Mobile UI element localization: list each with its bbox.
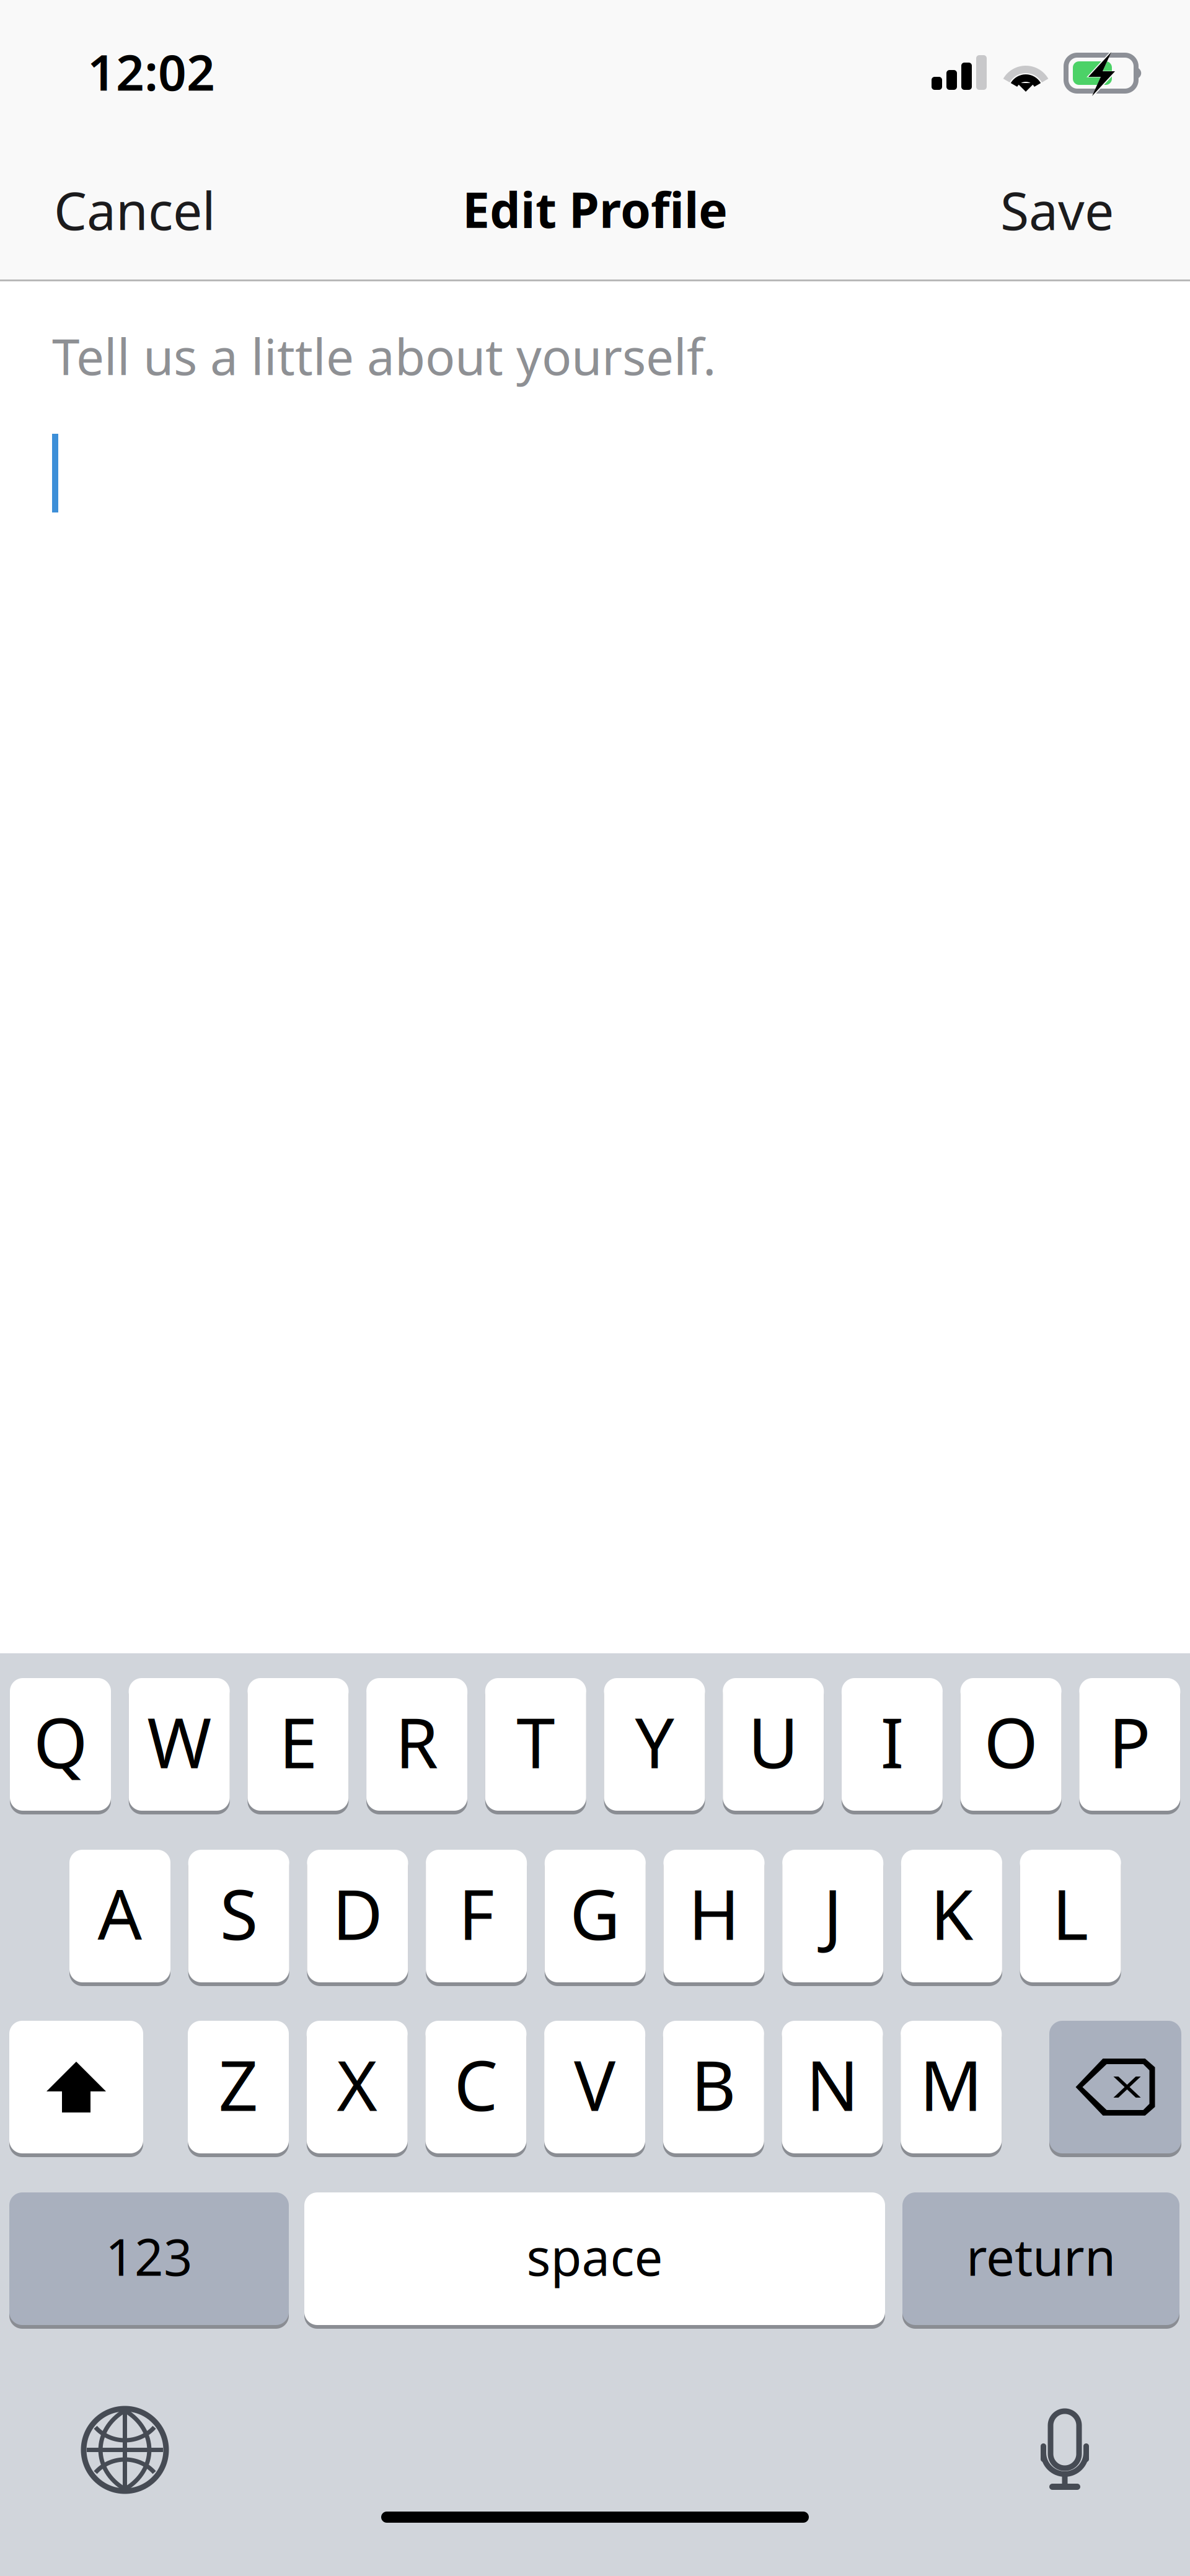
button[interactable]: T	[485, 1678, 586, 1814]
staticText: X	[337, 2038, 378, 2130]
button[interactable]: D	[307, 1850, 408, 1986]
button[interactable]: F	[426, 1850, 527, 1986]
staticText: Edit Profile	[462, 177, 728, 241]
button[interactable]: return	[902, 2192, 1179, 2329]
button[interactable]: X	[307, 2021, 408, 2157]
staticText: 12:02	[87, 38, 215, 104]
staticText: return	[966, 2223, 1116, 2290]
button[interactable]: A	[69, 1850, 170, 1986]
button[interactable]: Next keyboard	[84, 2409, 166, 2491]
button[interactable]: L	[1020, 1850, 1121, 1986]
button[interactable]: P	[1079, 1678, 1180, 1814]
staticText: N	[806, 2038, 859, 2130]
staticText: A	[98, 1867, 142, 1959]
button[interactable]: 123	[9, 2192, 289, 2329]
button[interactable]: S	[188, 1850, 289, 1986]
staticText: V	[574, 2038, 616, 2130]
button[interactable]: Save	[988, 158, 1126, 262]
button[interactable]: Z	[188, 2021, 289, 2157]
button[interactable]: Shift	[9, 2021, 143, 2157]
button[interactable]: Y	[604, 1678, 705, 1814]
button[interactable]: W	[129, 1678, 230, 1814]
button[interactable]: U	[723, 1678, 824, 1814]
staticText: Y	[635, 1695, 674, 1787]
staticText: Z	[218, 2038, 258, 2130]
button[interactable]: K	[901, 1850, 1002, 1986]
button[interactable]: Dictation	[1041, 2411, 1089, 2490]
staticText: R	[395, 1695, 439, 1787]
staticText: 123	[105, 2223, 193, 2290]
button[interactable]: G	[545, 1850, 646, 1986]
button[interactable]: H	[663, 1850, 765, 1986]
staticText: S	[220, 1867, 258, 1959]
staticText: space	[527, 2223, 663, 2290]
staticText: L	[1052, 1867, 1089, 1959]
button[interactable]: C	[425, 2021, 526, 2157]
button[interactable]: Cancel	[42, 158, 228, 262]
button[interactable]: M	[901, 2021, 1002, 2157]
staticText: I	[880, 1695, 904, 1787]
button[interactable]: I	[842, 1678, 943, 1814]
button[interactable]: N	[782, 2021, 883, 2157]
button[interactable]: Q	[10, 1678, 111, 1814]
staticText: C	[454, 2038, 498, 2130]
staticText: Cancel	[54, 175, 216, 244]
button[interactable]: R	[366, 1678, 467, 1814]
staticText: J	[823, 1867, 842, 1959]
staticText: T	[516, 1695, 555, 1787]
staticText: Save	[1000, 175, 1114, 244]
staticText: W	[147, 1695, 211, 1787]
staticText: E	[279, 1695, 317, 1787]
button[interactable]: B	[663, 2021, 764, 2157]
staticText: B	[691, 2038, 736, 2130]
staticText: Tell us a little about yourself.	[52, 323, 716, 389]
staticText: Q	[33, 1695, 87, 1787]
staticText: G	[570, 1867, 621, 1959]
button[interactable]: J	[782, 1850, 883, 1986]
button[interactable]: Delete	[1049, 2021, 1181, 2157]
staticText: F	[458, 1867, 494, 1959]
staticText: U	[748, 1695, 799, 1787]
staticText: P	[1109, 1695, 1151, 1787]
staticText: M	[920, 2038, 983, 2130]
button[interactable]: space	[304, 2192, 885, 2329]
staticText: D	[332, 1867, 383, 1959]
staticText: H	[688, 1867, 740, 1959]
button[interactable]: O	[960, 1678, 1061, 1814]
button[interactable]: V	[544, 2021, 645, 2157]
button[interactable]: E	[248, 1678, 349, 1814]
staticText: O	[984, 1695, 1038, 1787]
staticText: K	[930, 1867, 973, 1959]
